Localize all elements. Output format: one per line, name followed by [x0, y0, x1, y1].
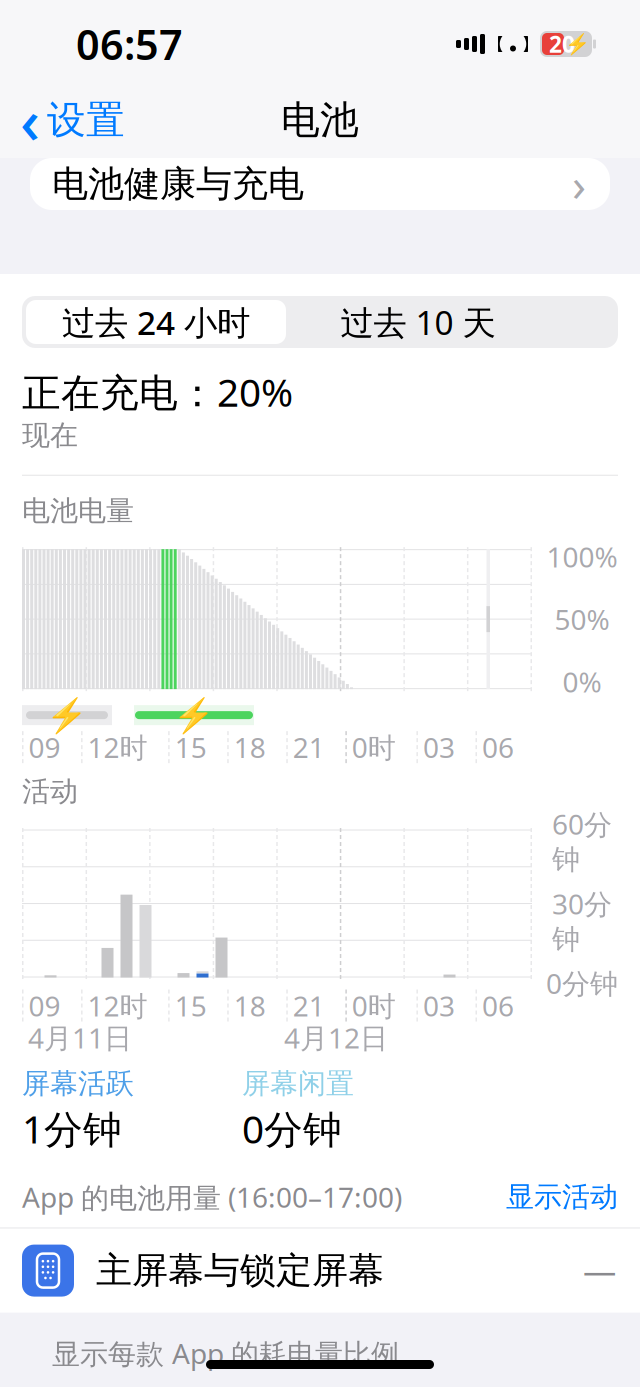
staticText: 正在充电：20%: [22, 366, 293, 417]
staticText: 显示每款 App 的耗电量比例。: [52, 1335, 427, 1372]
staticText: 主屏幕与锁定屏幕: [96, 1248, 384, 1293]
staticText: 现在: [22, 418, 78, 453]
staticText: 4月11日: [28, 1019, 132, 1056]
staticText: 60分钟: [552, 805, 612, 877]
button[interactable]: 显示活动: [506, 1180, 618, 1214]
staticText: ⚡: [564, 33, 589, 55]
staticText: 屏幕活跃: [22, 1066, 134, 1101]
staticText: 电池: [281, 96, 359, 144]
staticText: 屏幕闲置: [242, 1066, 354, 1101]
staticText: 过去 24 小时: [62, 300, 250, 344]
staticText: 电池电量: [22, 494, 134, 528]
staticText: 0时: [352, 987, 396, 1024]
button[interactable]: 主屏幕与锁定屏幕: [0, 1229, 640, 1313]
staticText: 06:57: [76, 17, 183, 71]
staticText: 30分钟: [552, 885, 612, 956]
staticText: 18: [234, 728, 266, 766]
staticText: 过去 10 天: [340, 300, 495, 344]
staticText: 03: [423, 987, 455, 1024]
staticText: 0时: [352, 728, 396, 766]
staticText: 0分钟: [546, 964, 618, 1002]
button[interactable]: 过去 10 天: [286, 300, 550, 344]
staticText: 06: [482, 987, 514, 1024]
button[interactable]: 电池健康与充电: [30, 158, 610, 210]
staticText: 15: [175, 987, 207, 1024]
staticText: ›: [572, 154, 586, 214]
staticText: 100%: [546, 538, 617, 575]
staticText: 1分钟: [22, 1103, 122, 1154]
staticText: 21: [293, 987, 325, 1024]
staticText: App 的电池用量 (16:00–17:00): [22, 1178, 402, 1216]
staticText: 12时: [88, 987, 148, 1024]
staticText: ⚡: [46, 696, 88, 734]
staticText: 50%: [554, 600, 609, 638]
staticText: 21: [293, 728, 325, 766]
staticText: ⚡: [173, 696, 215, 734]
staticText: ‹: [20, 79, 40, 161]
staticText: 20: [549, 29, 575, 59]
staticText: 12时: [88, 728, 148, 766]
button[interactable]: ‹: [0, 88, 137, 152]
button[interactable]: 过去 24 小时: [26, 300, 286, 344]
staticText: 0%: [562, 663, 601, 700]
staticText: 0分钟: [242, 1103, 342, 1154]
staticText: 03: [423, 728, 455, 766]
staticText: 15: [175, 728, 207, 766]
staticText: 电池健康与充电: [52, 162, 304, 206]
staticText: 18: [234, 987, 266, 1024]
staticText: 显示活动: [506, 1180, 618, 1214]
staticText: 4月12日: [284, 1019, 388, 1056]
staticText: 09: [28, 728, 60, 766]
staticText: —: [583, 1248, 616, 1293]
staticText: 活动: [22, 774, 78, 808]
staticText: 设置: [47, 96, 125, 144]
staticText: 06: [482, 728, 514, 766]
staticText: 09: [28, 987, 60, 1024]
